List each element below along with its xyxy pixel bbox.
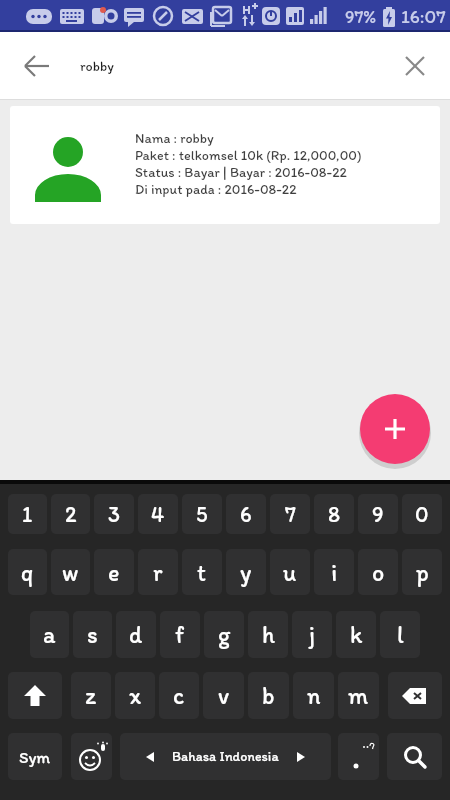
- staticText: q: [21, 558, 34, 587]
- staticText: r: [153, 558, 163, 587]
- button[interactable]: x: [115, 672, 155, 719]
- staticText: w: [62, 558, 79, 587]
- staticText: s: [87, 620, 98, 649]
- staticText: g: [218, 620, 231, 649]
- staticText: j: [309, 620, 315, 649]
- button[interactable]: o: [358, 549, 398, 595]
- button[interactable]: Bahasa Indonesia: [120, 733, 331, 780]
- button[interactable]: Sym: [8, 733, 62, 780]
- button[interactable]: [8, 672, 62, 719]
- staticText: n: [307, 681, 321, 710]
- button[interactable]: [22, 51, 52, 81]
- staticText: Paket : telkomsel 10k (Rp. 12,000,00): [135, 147, 362, 164]
- button[interactable]: t: [182, 549, 222, 595]
- button[interactable]: y: [226, 549, 266, 595]
- staticText: o: [372, 558, 385, 587]
- staticText: m: [348, 681, 369, 710]
- staticText: b: [262, 681, 275, 710]
- button[interactable]: g: [204, 611, 244, 658]
- button[interactable]: 6: [226, 494, 266, 534]
- button[interactable]: 0: [402, 494, 442, 534]
- button[interactable]: l: [380, 611, 420, 658]
- staticText: 0: [415, 501, 429, 527]
- button[interactable]: r: [138, 549, 178, 595]
- staticText: v: [218, 681, 230, 710]
- staticText: x: [129, 681, 141, 710]
- staticText: Sym: [19, 747, 51, 767]
- staticText: f: [175, 620, 185, 649]
- button[interactable]: f: [160, 611, 200, 658]
- staticText: 9: [372, 501, 384, 527]
- button[interactable]: 1: [8, 494, 47, 534]
- staticText: p: [416, 558, 429, 587]
- staticText: 97%: [345, 6, 377, 28]
- button[interactable]: [402, 53, 428, 79]
- button[interactable]: 5: [182, 494, 222, 534]
- button[interactable]: [360, 394, 430, 464]
- button[interactable]: Nama : robby: [10, 106, 440, 224]
- button[interactable]: s: [73, 611, 112, 658]
- staticText: robby: [80, 58, 114, 75]
- staticText: z: [85, 681, 97, 710]
- button[interactable]: h: [248, 611, 288, 658]
- button[interactable]: [71, 733, 112, 780]
- button[interactable]: 7: [270, 494, 310, 534]
- staticText: 16:07: [401, 5, 446, 28]
- staticText: 1: [22, 501, 33, 527]
- button[interactable]: [338, 733, 379, 780]
- staticText: 6: [240, 501, 252, 527]
- button[interactable]: 9: [358, 494, 398, 534]
- button[interactable]: u: [270, 549, 310, 595]
- button[interactable]: m: [338, 672, 379, 719]
- staticText: c: [173, 681, 185, 710]
- staticText: t: [197, 558, 207, 587]
- button[interactable]: e: [94, 549, 134, 595]
- staticText: k: [350, 620, 363, 649]
- button[interactable]: 3: [94, 494, 134, 534]
- button[interactable]: k: [336, 611, 376, 658]
- staticText: e: [108, 558, 120, 587]
- button[interactable]: v: [203, 672, 244, 719]
- staticText: i: [331, 558, 338, 587]
- button[interactable]: p: [402, 549, 442, 595]
- staticText: Status : Bayar | Bayar : 2016-08-22: [135, 164, 347, 181]
- button[interactable]: [387, 733, 442, 780]
- button[interactable]: i: [314, 549, 354, 595]
- button[interactable]: c: [159, 672, 199, 719]
- staticText: 7: [285, 501, 296, 527]
- staticText: l: [397, 620, 404, 649]
- staticText: 5: [196, 501, 208, 527]
- button[interactable]: q: [8, 549, 47, 595]
- button[interactable]: w: [51, 549, 90, 595]
- button[interactable]: j: [292, 611, 332, 658]
- staticText: 4: [151, 501, 165, 527]
- staticText: Di input pada : 2016-08-22: [135, 181, 297, 198]
- button[interactable]: 8: [314, 494, 354, 534]
- staticText: u: [283, 558, 297, 587]
- staticText: h: [262, 620, 275, 649]
- staticText: 8: [328, 501, 341, 527]
- staticText: d: [129, 620, 143, 649]
- button[interactable]: [388, 672, 442, 719]
- button[interactable]: 2: [51, 494, 90, 534]
- button[interactable]: b: [248, 672, 289, 719]
- staticText: Bahasa Indonesia: [172, 748, 279, 765]
- button[interactable]: z: [71, 672, 111, 719]
- button[interactable]: a: [30, 611, 69, 658]
- staticText: Nama : robby: [135, 130, 214, 147]
- staticText: 2: [65, 501, 77, 527]
- staticText: y: [240, 558, 252, 587]
- staticText: 3: [108, 501, 120, 527]
- staticText: a: [43, 620, 56, 649]
- button[interactable]: d: [116, 611, 156, 658]
- button[interactable]: 4: [138, 494, 178, 534]
- button[interactable]: n: [293, 672, 334, 719]
